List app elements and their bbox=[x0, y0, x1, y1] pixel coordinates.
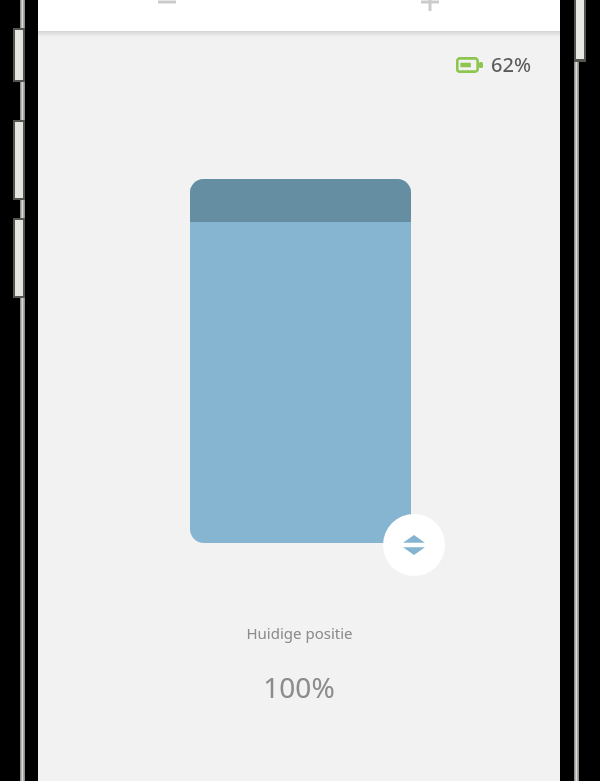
staticText: 62% bbox=[491, 51, 531, 78]
button[interactable]: Increase bbox=[406, 0, 454, 26]
staticText: 100% bbox=[263, 668, 335, 706]
button[interactable] bbox=[190, 179, 411, 543]
button[interactable]: Decrease bbox=[143, 0, 191, 26]
button[interactable]: Open or close curtain bbox=[383, 514, 445, 576]
staticText: Huidige positie bbox=[246, 623, 353, 643]
